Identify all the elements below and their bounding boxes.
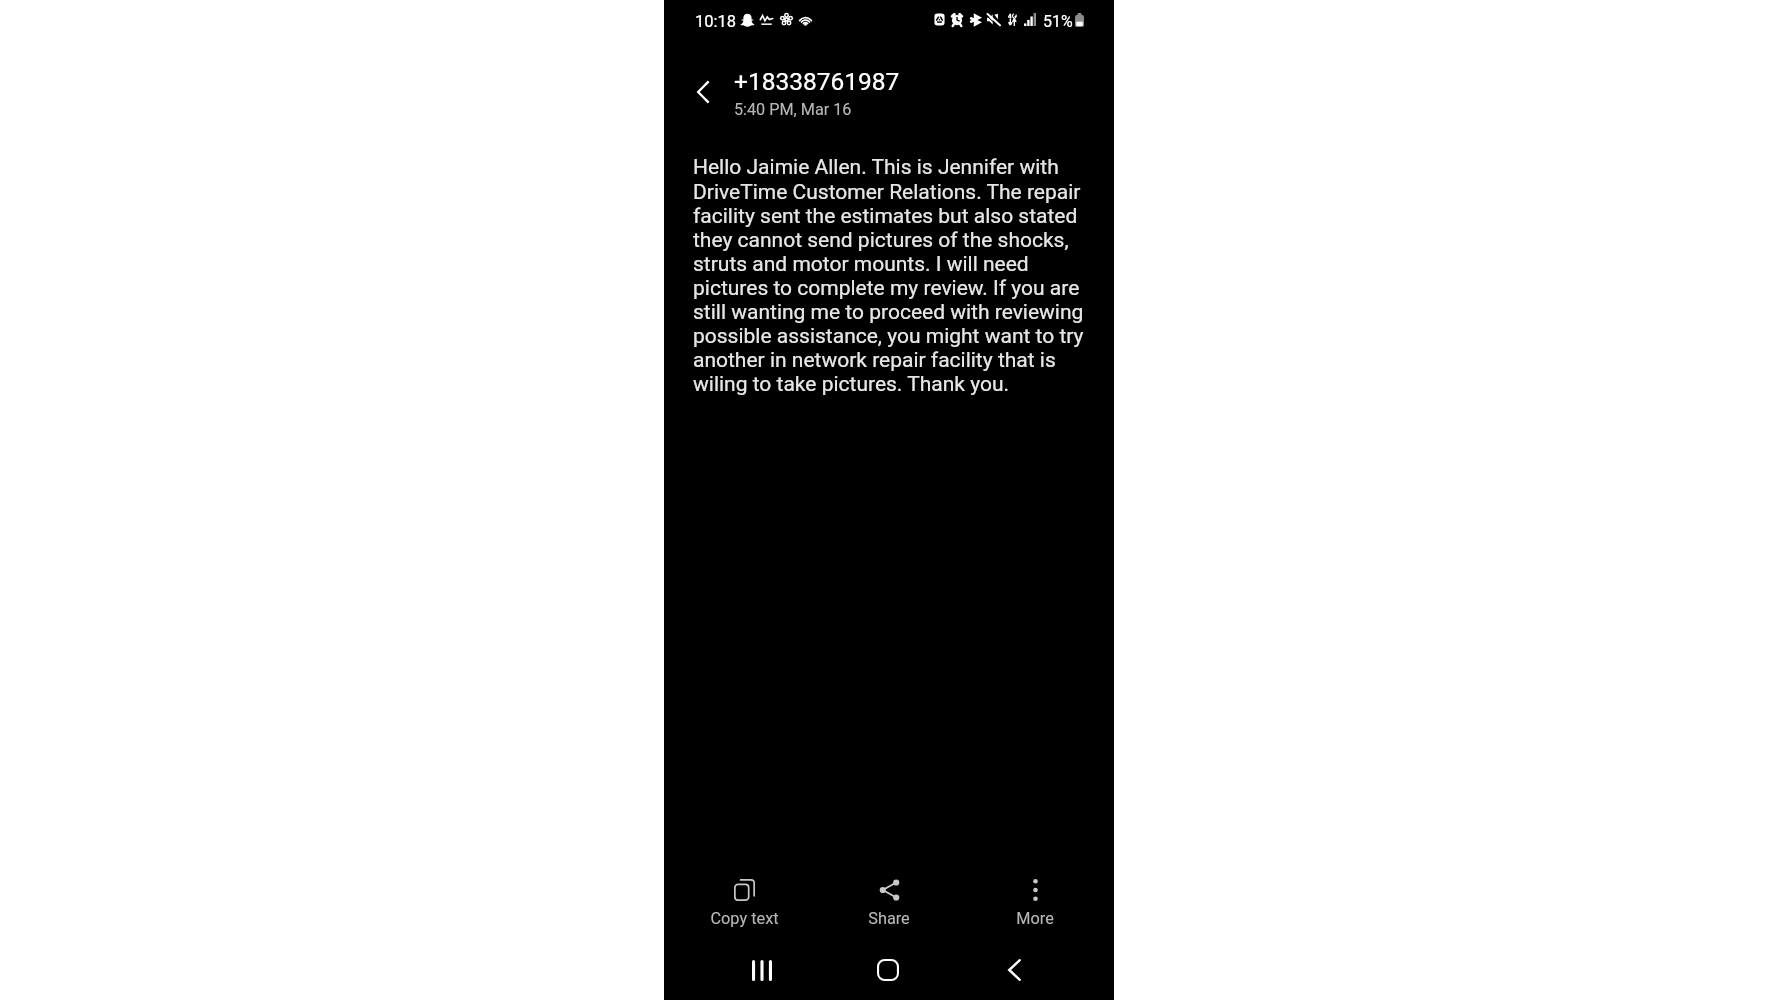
staticText: More <box>1016 909 1054 928</box>
button[interactable]: Back <box>675 64 731 120</box>
staticText: 5:40 PM, Mar 16 <box>734 100 852 119</box>
button[interactable]: Home <box>862 944 914 996</box>
button[interactable]: Copy text <box>681 868 807 928</box>
staticText: 10:18 <box>695 12 737 31</box>
button[interactable]: Recent apps <box>736 944 788 996</box>
staticText: Hello Jaimie Allen. This is Jennifer wit… <box>693 155 1098 396</box>
button[interactable]: More <box>972 868 1098 928</box>
staticText: 51% <box>1043 12 1073 31</box>
button[interactable]: Back <box>988 944 1040 996</box>
staticText: +18338761987 <box>734 67 900 96</box>
staticText: Copy text <box>710 909 779 928</box>
button[interactable]: Share <box>826 868 952 928</box>
staticText: Share <box>868 909 910 928</box>
